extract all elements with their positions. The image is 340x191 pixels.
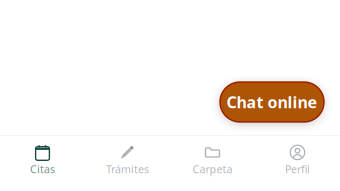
staticText: Carpeta [192, 162, 232, 176]
button[interactable]: Carpeta [170, 144, 255, 176]
staticText: Citas [30, 162, 55, 176]
staticText: Perfil [285, 162, 310, 176]
staticText: Trámites [106, 162, 149, 176]
button[interactable]: Perfil [255, 144, 340, 176]
button[interactable]: Trámites [85, 144, 170, 176]
staticText: Chat online [226, 91, 317, 113]
button[interactable]: Chat online [220, 82, 324, 122]
button[interactable]: Citas [0, 144, 85, 176]
